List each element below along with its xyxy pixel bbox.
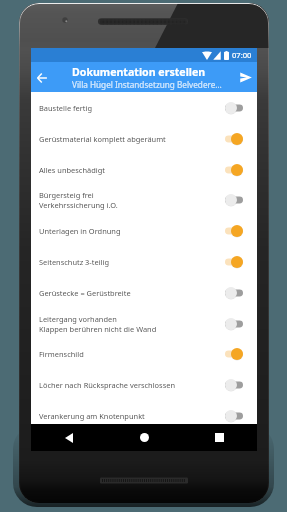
staticText: Bürgersteig frei Verkehrssicherung i.O. [39, 190, 220, 210]
staticText: Alles unbeschädigt [39, 165, 220, 175]
button[interactable]: Back [31, 424, 107, 451]
staticText: 07:00 [232, 50, 252, 60]
button[interactable]: Gerüstmaterial komplett abgeräumt [31, 123, 257, 154]
staticText: Verankerung am Knotenpunkt [39, 411, 220, 421]
staticText: Baustelle fertig [39, 103, 220, 113]
button[interactable]: Bürgersteig frei Verkehrssicherung i.O. [31, 184, 257, 215]
button[interactable]: Löcher nach Rücksprache verschlossen [31, 369, 257, 400]
button[interactable]: Baustelle fertig [31, 92, 257, 123]
staticText: Villa Hügel Instandsetzung Belvedere… [72, 79, 222, 90]
staticText: Unterlagen in Ordnung [39, 226, 220, 236]
staticText: Löcher nach Rücksprache verschlossen [39, 380, 220, 390]
button[interactable]: Gerüstecke = Gerüstbreite [31, 277, 257, 308]
button[interactable]: Send [233, 62, 257, 92]
button[interactable]: Verankerung am Knotenpunkt [31, 400, 257, 431]
button[interactable]: Unterlagen in Ordnung [31, 215, 257, 246]
staticText: Seitenschutz 3-teilig [39, 257, 220, 267]
staticText: Leitergang vorhanden Klappen berühren ni… [39, 314, 220, 334]
button[interactable]: Recents [182, 424, 257, 451]
button[interactable]: Home [107, 424, 182, 451]
staticText: Gerüstmaterial komplett abgeräumt [39, 134, 220, 144]
button[interactable]: Back [31, 62, 53, 92]
button[interactable]: Alles unbeschädigt [31, 154, 257, 185]
button[interactable]: Leitergang vorhanden Klappen berühren ni… [31, 308, 257, 339]
staticText: Firmenschild [39, 349, 220, 359]
staticText: Dokumentation erstellen [72, 65, 206, 79]
button[interactable]: Firmenschild [31, 338, 257, 369]
button[interactable]: Seitenschutz 3-teilig [31, 246, 257, 277]
staticText: Gerüstecke = Gerüstbreite [39, 288, 220, 298]
